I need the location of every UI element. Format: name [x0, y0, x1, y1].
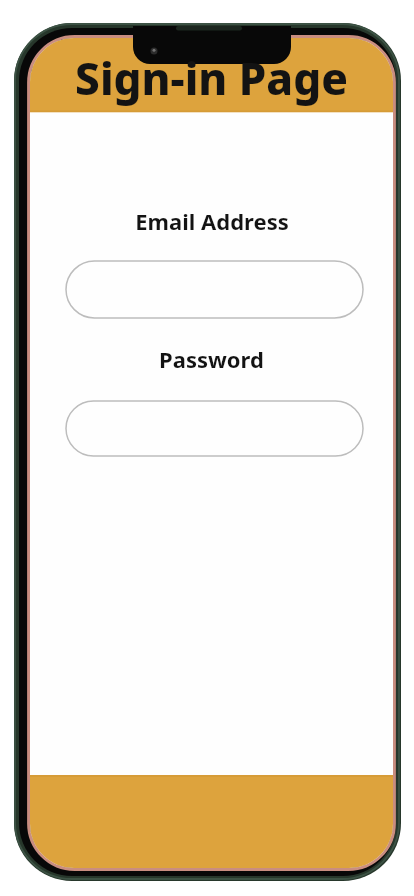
button[interactable]: Email Address input field — [66, 261, 363, 318]
button[interactable]: Password input field — [66, 401, 363, 456]
button[interactable]: Sign in — [30, 776, 393, 868]
staticText: Email Address — [135, 206, 289, 234]
staticText: Password — [159, 344, 264, 372]
button[interactable]: Sign-in Page — [30, 38, 393, 112]
staticText: Sign-in Page — [75, 48, 348, 108]
